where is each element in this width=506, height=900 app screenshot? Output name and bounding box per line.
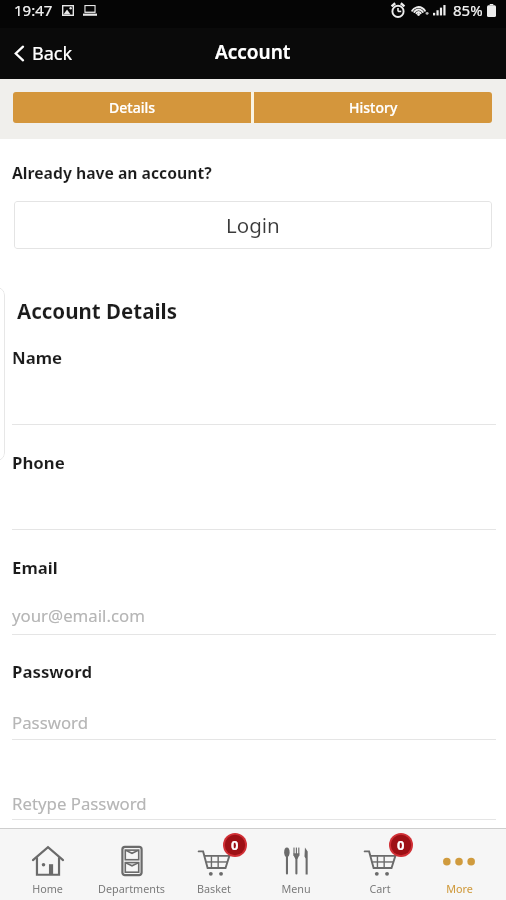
staticText: Cart	[369, 881, 391, 896]
staticText: Name	[12, 346, 63, 369]
button[interactable]: Login	[14, 201, 492, 249]
staticText: 0	[231, 836, 239, 854]
staticText: Account Details	[17, 297, 177, 325]
staticText: History	[349, 98, 398, 117]
staticText: More	[446, 881, 473, 896]
button[interactable]: Menu	[254, 829, 338, 900]
staticText: 0	[397, 836, 405, 854]
staticText: Login	[226, 211, 280, 239]
staticText: Password	[12, 660, 93, 683]
staticText: Email	[12, 556, 58, 579]
button[interactable]: History	[254, 92, 492, 123]
button[interactable]: Home	[0, 829, 85, 900]
staticText: Retype Password	[12, 792, 147, 815]
staticText: Home	[32, 881, 63, 896]
staticText: Account	[215, 39, 291, 65]
staticText: Password	[12, 711, 88, 734]
staticText: Phone	[12, 451, 65, 474]
staticText: 85%	[453, 0, 483, 20]
button[interactable]: Basket	[170, 829, 254, 900]
staticText: Basket	[197, 881, 231, 896]
button[interactable]: Cart	[338, 829, 422, 900]
staticText: Details	[109, 98, 156, 117]
button[interactable]: Details	[13, 92, 251, 123]
staticText: Departments	[98, 881, 165, 896]
button[interactable]: More	[422, 829, 506, 900]
staticText: Back	[32, 41, 73, 66]
staticText: Menu	[281, 881, 311, 896]
button[interactable]: Back	[0, 33, 87, 74]
staticText: Already have an account?	[12, 162, 212, 183]
staticText: your@email.com	[12, 604, 145, 627]
staticText: 19:47	[14, 0, 53, 20]
button[interactable]: Departments	[85, 829, 170, 900]
